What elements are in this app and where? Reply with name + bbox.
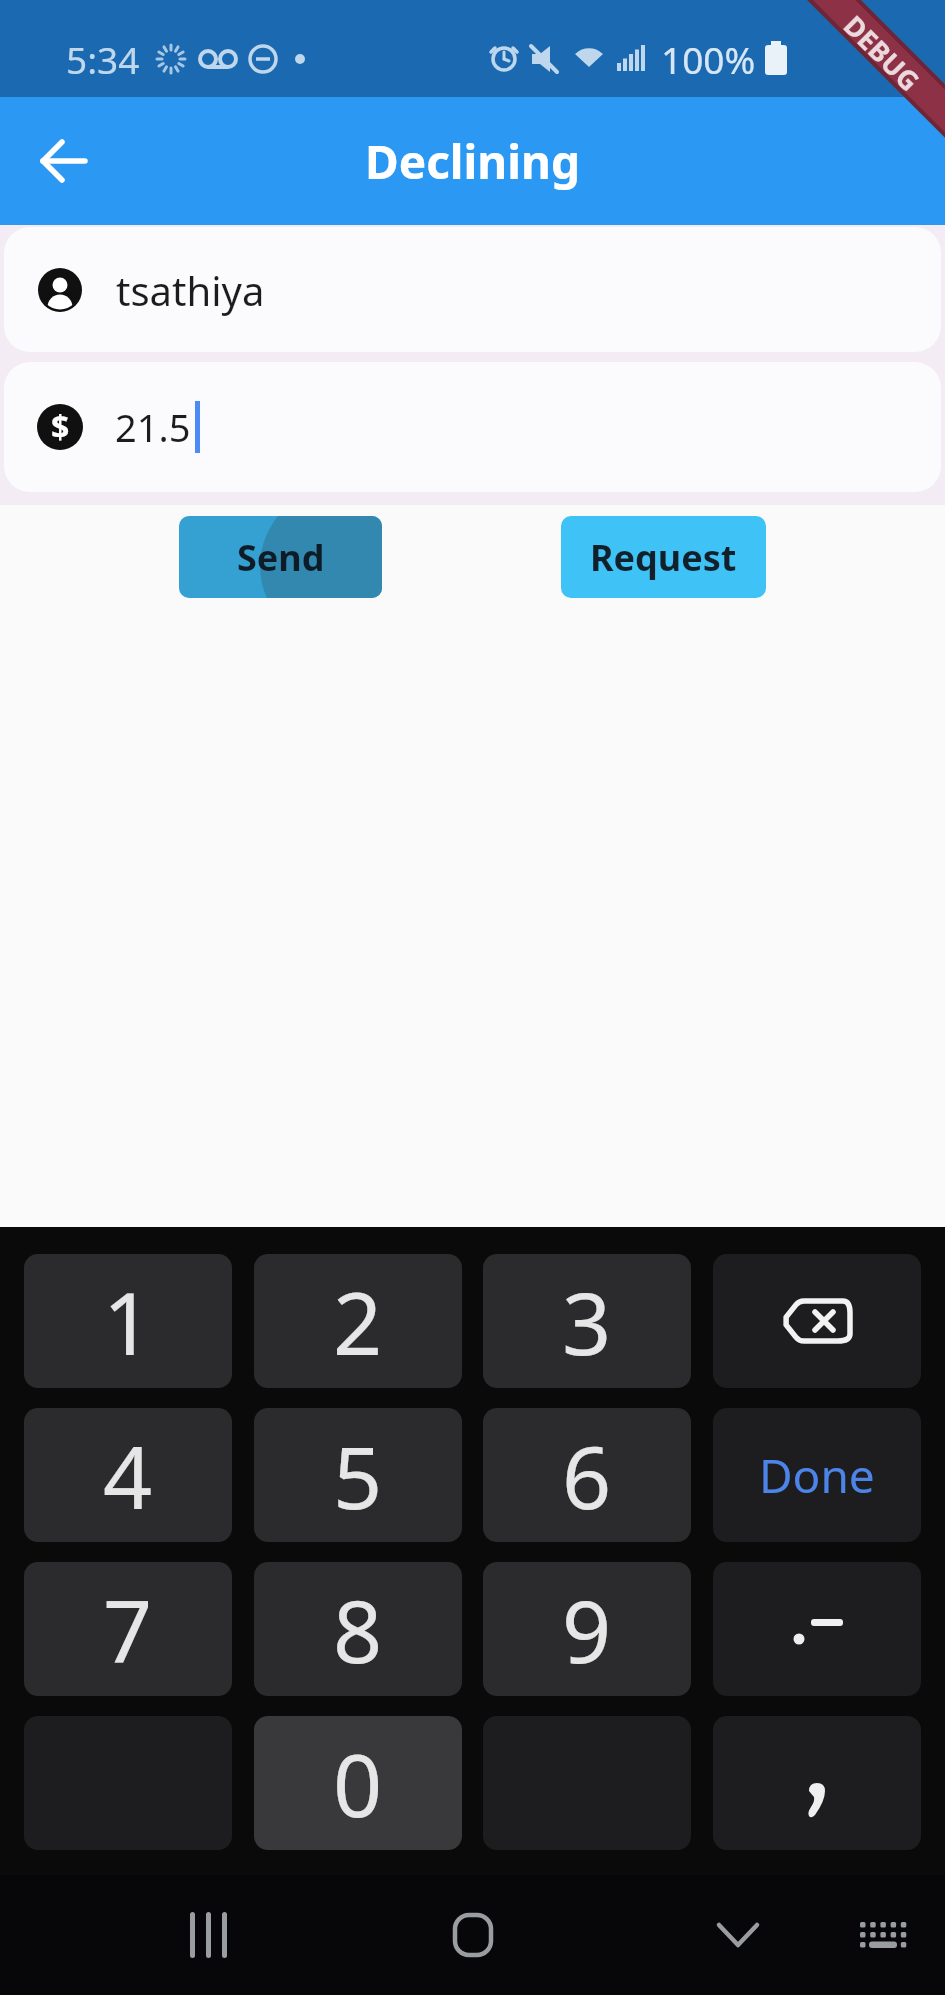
staticText: 100% [661,34,756,84]
button[interactable]: 1 [24,1254,232,1388]
button[interactable]: tsathiya [4,227,941,352]
button[interactable]: Request [561,516,766,598]
button[interactable]: 6 [483,1408,691,1542]
button[interactable]: 3 [483,1254,691,1388]
button[interactable] [441,1903,505,1967]
button[interactable] [853,1905,913,1965]
staticText: 3 [562,1263,612,1380]
staticText: Declining [365,130,580,193]
button[interactable]: 8 [254,1562,462,1696]
staticText: 1 [103,1263,153,1380]
button[interactable]: Done [713,1408,921,1542]
button[interactable]: 7 [24,1562,232,1696]
button[interactable] [713,1716,921,1850]
staticText: Done [759,1444,875,1507]
staticText: DEBUG [841,7,928,94]
staticText: 7 [103,1571,153,1688]
button[interactable]: $ [4,362,941,492]
staticText: 6 [562,1417,612,1534]
staticText: 5:34 [66,34,140,84]
staticText: 5 [333,1417,383,1534]
staticText: $ [51,405,70,449]
button[interactable] [713,1562,921,1696]
button[interactable]: 0 [254,1716,462,1850]
button[interactable]: 2 [254,1254,462,1388]
button[interactable]: 5 [254,1408,462,1542]
staticText: 8 [333,1571,383,1688]
staticText: 21.5 [115,401,191,453]
staticText: Request [590,533,737,582]
button[interactable] [178,1903,242,1967]
staticText: 9 [562,1571,612,1688]
button[interactable]: Send [179,516,382,598]
staticText: Send [237,533,325,582]
staticText: 0 [333,1725,383,1842]
staticText: 2 [333,1263,383,1380]
button[interactable] [30,127,98,195]
staticText: tsathiya [116,263,265,317]
button[interactable]: 4 [24,1408,232,1542]
button[interactable]: 9 [483,1562,691,1696]
button[interactable] [706,1903,770,1967]
staticText: 4 [103,1417,153,1534]
button[interactable] [713,1254,921,1388]
